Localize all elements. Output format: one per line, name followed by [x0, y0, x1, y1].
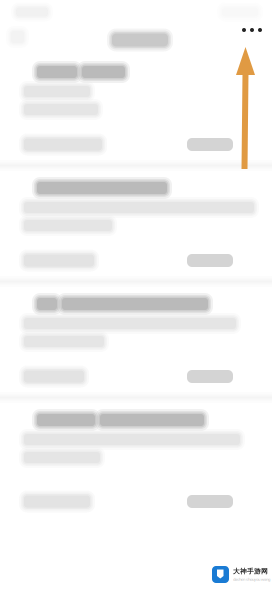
- button[interactable]: More options: [228, 24, 272, 50]
- button[interactable]: [187, 248, 272, 273]
- button[interactable]: [187, 489, 272, 514]
- button[interactable]: [187, 364, 272, 389]
- button[interactable]: Back: [0, 24, 35, 50]
- staticText: 大神手游网: [233, 567, 268, 575]
- button[interactable]: [187, 132, 272, 157]
- staticText: dashen shouyou wang: [233, 576, 270, 582]
